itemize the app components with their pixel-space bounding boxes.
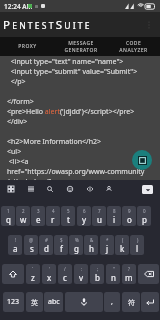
staticText: e — [36, 214, 41, 225]
button[interactable]: shift — [2, 264, 24, 284]
staticText: <input type="submit" value="Submit"> — [7, 67, 138, 77]
button[interactable]: ( — [115, 235, 129, 255]
staticText: j — [106, 243, 109, 254]
button[interactable]: MESSAGE GENERATOR — [54, 37, 107, 56]
staticText: ! — [15, 237, 17, 243]
staticText: @ — [29, 237, 34, 243]
staticText: 4 — [52, 208, 55, 214]
staticText: , — [111, 297, 113, 307]
staticText: PROXY — [18, 43, 37, 50]
staticText: ` — [32, 266, 34, 272]
staticText: CODE ANALYZER — [119, 40, 148, 53]
button[interactable]: * — [100, 235, 114, 255]
staticText: " — [113, 266, 115, 272]
staticText: a — [13, 243, 18, 254]
staticText: <ul> — [7, 147, 22, 157]
button[interactable]: Text edit — [23, 181, 38, 196]
button[interactable]: ? — [122, 264, 136, 284]
button[interactable]: Account — [101, 181, 116, 196]
staticText: 8 — [113, 208, 116, 214]
button[interactable]: " — [106, 264, 120, 284]
staticText: s — [30, 243, 34, 254]
staticText: 12:24 AM — [4, 2, 33, 11]
button[interactable]: Search — [42, 181, 57, 196]
staticText: u — [97, 214, 102, 225]
staticText: ? — [128, 266, 130, 272]
button[interactable]: 123 — [3, 292, 24, 312]
staticText: PENTESTSUITE — [3, 17, 92, 33]
staticText: abc — [48, 297, 60, 307]
button[interactable]: PROXY — [0, 37, 54, 56]
button[interactable]: ! — [8, 235, 22, 255]
staticText: 123 — [7, 297, 20, 307]
staticText: q — [6, 214, 11, 225]
staticText: d — [44, 243, 49, 254]
button[interactable]: 9 — [122, 206, 136, 226]
button[interactable]: @ — [24, 235, 38, 255]
button[interactable]: 4 — [46, 206, 60, 226]
button[interactable]: back — [138, 264, 159, 284]
staticText: <h2>More Information</h2> — [7, 137, 101, 147]
button[interactable]: 1 — [1, 206, 15, 226]
staticText: w — [20, 214, 27, 225]
staticText: t — [67, 214, 70, 225]
button[interactable]: 符 — [122, 292, 140, 312]
staticText: 0 — [143, 208, 146, 214]
staticText: 英 — [31, 298, 38, 307]
button[interactable]: % — [69, 235, 83, 255]
staticText: 7 — [98, 208, 101, 214]
staticText: k — [120, 243, 125, 254]
staticText: g — [74, 243, 79, 254]
staticText: z — [31, 272, 35, 283]
button[interactable]: Clipboard — [3, 181, 18, 196]
button[interactable]: Emoji — [62, 181, 77, 196]
staticText: y — [82, 214, 87, 225]
staticText: /attacks/xss/" — [7, 177, 52, 187]
button[interactable]: ; — [90, 264, 104, 284]
button[interactable]: Translate — [82, 181, 97, 196]
staticText: ; — [97, 266, 99, 272]
staticText: $ — [60, 237, 63, 243]
button[interactable]: 英 — [26, 292, 43, 312]
button[interactable]: CODE ANALYZER — [107, 37, 160, 56]
button[interactable]: : — [74, 264, 88, 284]
button[interactable]: Scan — [132, 150, 152, 170]
staticText: n — [111, 272, 116, 283]
staticText: # — [45, 237, 48, 243]
staticText: : — [81, 266, 83, 272]
button[interactable]: abc — [44, 292, 63, 312]
button[interactable]: 3 — [31, 206, 45, 226]
button[interactable]: 0 — [137, 206, 151, 226]
staticText: f — [60, 243, 63, 254]
staticText: h — [89, 243, 94, 254]
button[interactable]: 6 — [77, 206, 91, 226]
button[interactable]: enter — [141, 292, 159, 312]
staticText: m — [125, 272, 133, 283]
button[interactable]: ` — [26, 264, 40, 284]
staticText: </p> — [7, 77, 26, 87]
button[interactable]: & — [84, 235, 98, 255]
button[interactable]: / — [58, 264, 72, 284]
staticText: / — [64, 266, 66, 272]
button[interactable]: # — [39, 235, 53, 255]
staticText: p — [142, 214, 147, 225]
button[interactable]: 5 — [61, 206, 75, 226]
button[interactable]: 7 — [92, 206, 106, 226]
staticText: ' — [49, 266, 51, 272]
staticText: i — [113, 214, 116, 225]
staticText: </form> — [7, 97, 34, 107]
staticText: c — [63, 272, 67, 283]
staticText: href="https://owasp.org/www-community — [7, 167, 145, 177]
button[interactable]: $ — [54, 235, 68, 255]
button[interactable]: 2 — [16, 206, 30, 226]
staticText: ( — [122, 237, 124, 243]
button[interactable]: ' — [42, 264, 56, 284]
button[interactable]: ) — [130, 235, 144, 255]
button[interactable]: Hide keyboard — [142, 185, 153, 194]
button[interactable]: space — [65, 292, 103, 312]
staticText: <input type="text" name="name"> — [7, 57, 124, 67]
button[interactable]: , — [104, 292, 120, 312]
staticText: 5 — [67, 208, 70, 214]
button[interactable]: 8 — [107, 206, 121, 226]
